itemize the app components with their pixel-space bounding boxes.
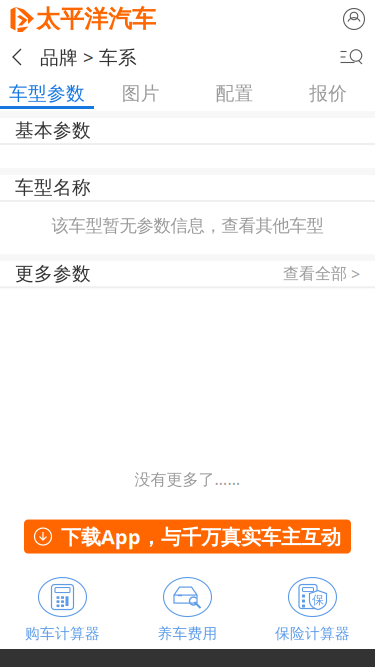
- button[interactable]: 车型参数: [0, 76, 94, 111]
- staticText: >: [347, 263, 360, 284]
- staticText: 太平洋汽车: [36, 4, 156, 34]
- staticText: 配置: [215, 82, 253, 105]
- button[interactable]: Account: [343, 8, 375, 30]
- staticText: 保险计算器: [275, 624, 350, 642]
- staticText: 车型参数: [9, 82, 85, 105]
- staticText: 图片: [122, 82, 160, 105]
- staticText: 该车型暂无参数信息，查看其他车型: [51, 215, 323, 236]
- button[interactable]: 品牌 > 车系: [40, 45, 137, 69]
- button[interactable]: 太平洋汽车: [0, 4, 156, 34]
- staticText: 保: [312, 593, 324, 607]
- button[interactable]: 保: [250, 577, 375, 642]
- staticText: 更多参数: [15, 262, 91, 285]
- staticText: 报价: [309, 82, 347, 105]
- staticText: 购车计算器: [25, 624, 100, 642]
- button[interactable]: 下载App，与千万真实车主互动: [24, 519, 351, 553]
- button[interactable]: 配置: [187, 76, 281, 111]
- button[interactable]: 更多参数: [0, 261, 375, 286]
- button[interactable]: Back: [0, 48, 40, 66]
- button[interactable]: 报价: [281, 76, 375, 111]
- button[interactable]: Search: [342, 49, 375, 65]
- staticText: 养车费用: [157, 624, 217, 642]
- button[interactable]: 购车计算器: [0, 577, 125, 642]
- staticText: 没有更多了……: [134, 468, 240, 489]
- button[interactable]: 养车费用: [125, 577, 250, 642]
- button[interactable]: 基本参数: [0, 118, 375, 143]
- staticText: 车型名称: [15, 176, 91, 199]
- button[interactable]: 车型名称: [0, 175, 375, 200]
- button[interactable]: 图片: [94, 76, 188, 111]
- staticText: 品牌 > 车系: [40, 45, 137, 69]
- staticText: 查看全部: [283, 264, 347, 284]
- staticText: 下载App，与千万真实车主互动: [61, 523, 341, 550]
- staticText: 基本参数: [15, 119, 91, 142]
